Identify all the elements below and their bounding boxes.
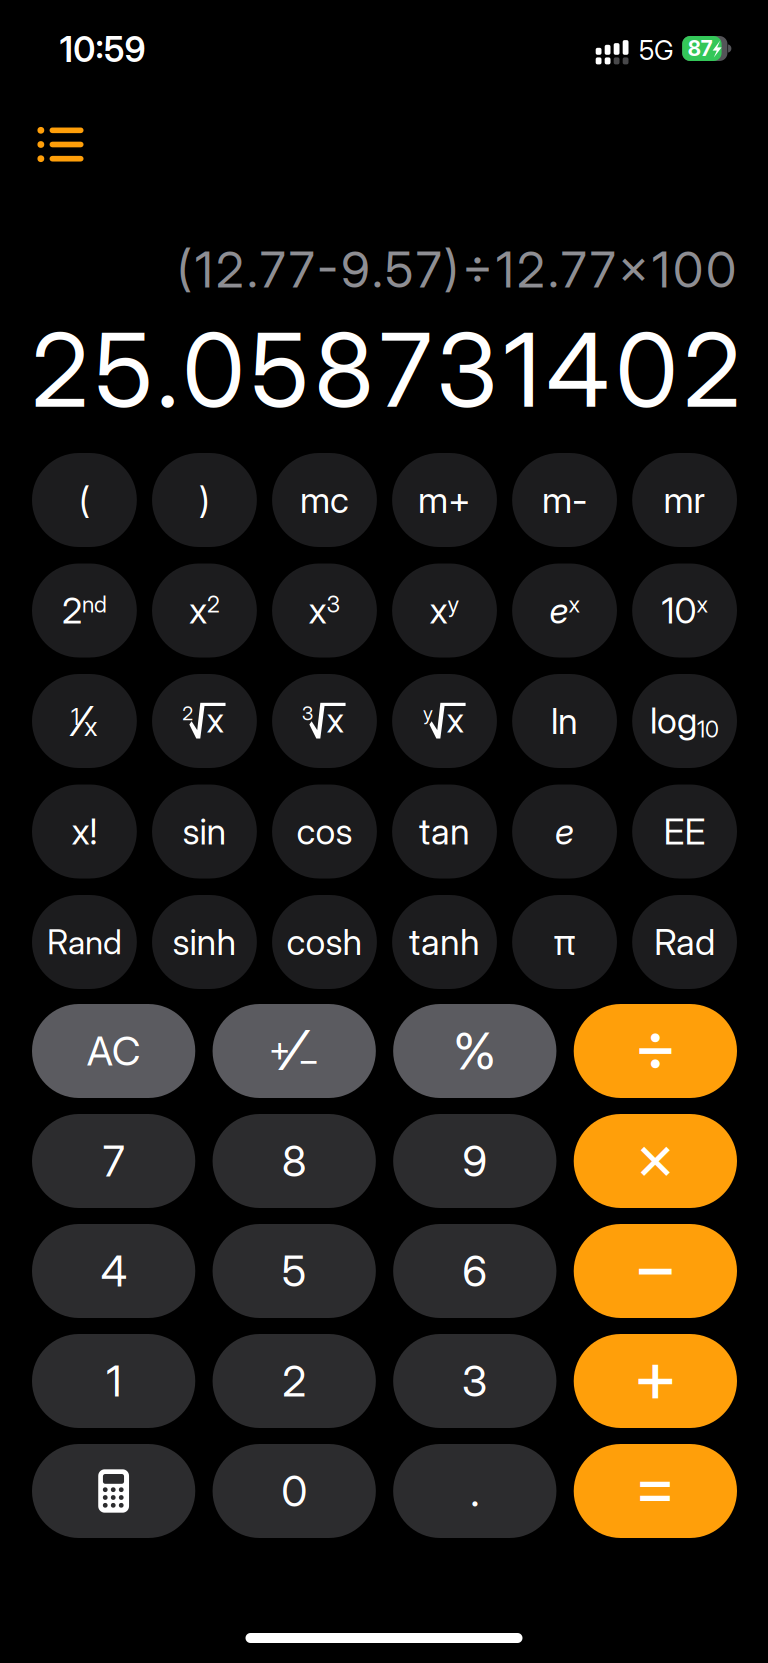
staticText: m- xyxy=(542,478,587,522)
button[interactable]: Rand xyxy=(32,895,137,989)
button[interactable]: 8 xyxy=(213,1114,376,1208)
button[interactable]: log10 xyxy=(632,674,737,768)
button[interactable]: tanh xyxy=(392,895,497,989)
staticText: 10x xyxy=(662,589,708,632)
staticText: x xyxy=(327,699,345,741)
staticText: x3 xyxy=(308,589,340,632)
staticText: + xyxy=(633,1332,678,1419)
button[interactable]: − xyxy=(574,1224,737,1318)
button[interactable]: 2 xyxy=(152,674,257,768)
button[interactable]: x3 xyxy=(272,563,377,657)
staticText: 0 xyxy=(281,1465,307,1517)
button[interactable]: 7 xyxy=(32,1114,195,1208)
staticText: 9 xyxy=(462,1135,487,1187)
button[interactable]: AC xyxy=(32,1004,195,1098)
button[interactable]: x! xyxy=(32,784,137,878)
staticText: x! xyxy=(71,810,97,853)
staticText: 4 xyxy=(101,1245,127,1297)
staticText: = xyxy=(634,1445,677,1527)
button[interactable]: ÷ xyxy=(574,1004,737,1098)
button[interactable]: 6 xyxy=(393,1224,556,1318)
staticText: 3 xyxy=(462,1355,488,1407)
button[interactable]: xy xyxy=(392,563,497,657)
staticText: x2 xyxy=(189,589,220,632)
button[interactable]: = xyxy=(574,1444,737,1538)
button[interactable]: mc xyxy=(272,453,377,547)
button[interactable]: 9 xyxy=(393,1114,556,1208)
button[interactable]: 2 xyxy=(213,1334,376,1428)
button[interactable]: Calculator mode xyxy=(32,1444,195,1538)
button[interactable]: 1⁄x xyxy=(32,674,137,768)
staticText: tanh xyxy=(409,920,480,964)
staticText: x xyxy=(447,699,465,741)
staticText: 2 xyxy=(182,702,193,725)
button[interactable]: sin xyxy=(152,784,257,878)
button[interactable]: % xyxy=(393,1004,556,1098)
staticText: m+ xyxy=(418,478,471,522)
button[interactable]: x2 xyxy=(152,563,257,657)
staticText: (12.77-9.57)÷12.77×100 xyxy=(177,240,736,299)
staticText: sin xyxy=(182,810,226,853)
staticText: EE xyxy=(664,810,706,853)
staticText: x xyxy=(206,699,224,741)
staticText: +⁄− xyxy=(269,1018,320,1082)
staticText: Rad xyxy=(654,920,715,964)
staticText: 3 xyxy=(302,702,314,725)
staticText: Rand xyxy=(47,922,122,962)
button[interactable]: 4 xyxy=(32,1224,195,1318)
staticText: xy xyxy=(429,589,459,632)
button[interactable]: m+ xyxy=(392,453,497,547)
button[interactable]: cos xyxy=(272,784,377,878)
button[interactable]: sinh xyxy=(152,895,257,989)
staticText: cos xyxy=(296,810,352,853)
button[interactable]: 3 xyxy=(272,674,377,768)
button[interactable]: Menu xyxy=(12,100,108,188)
staticText: 2nd xyxy=(62,589,107,632)
button[interactable]: ln xyxy=(512,674,617,768)
staticText: 10:59 xyxy=(60,28,145,70)
staticText: − xyxy=(633,1222,678,1309)
staticText: 8 xyxy=(282,1135,307,1187)
staticText: e xyxy=(555,810,574,853)
button[interactable]: ) xyxy=(152,453,257,547)
button[interactable]: y xyxy=(392,674,497,768)
button[interactable]: 3 xyxy=(393,1334,556,1428)
staticText: log10 xyxy=(650,699,719,743)
button[interactable]: m- xyxy=(512,453,617,547)
staticText: ) xyxy=(199,478,210,522)
staticText: 5 xyxy=(282,1245,307,1297)
staticText: mr xyxy=(664,478,706,522)
staticText: ln xyxy=(551,699,578,743)
button[interactable]: Rad xyxy=(632,895,737,989)
staticText: 1 xyxy=(106,1355,121,1407)
staticText: ( xyxy=(79,478,90,522)
staticText: cosh xyxy=(286,920,362,964)
button[interactable]: e xyxy=(512,784,617,878)
button[interactable]: EE xyxy=(632,784,737,878)
staticText: 2 xyxy=(282,1355,306,1407)
button[interactable]: tan xyxy=(392,784,497,878)
staticText: 1⁄x xyxy=(71,697,98,745)
button[interactable]: 10x xyxy=(632,563,737,657)
staticText: AC xyxy=(87,1027,141,1075)
staticText: ex xyxy=(549,589,579,632)
staticText: ÷ xyxy=(633,1003,677,1088)
button[interactable]: mr xyxy=(632,453,737,547)
button[interactable]: cosh xyxy=(272,895,377,989)
button[interactable]: 0 xyxy=(213,1444,376,1538)
button[interactable]: + xyxy=(574,1334,737,1428)
button[interactable]: +⁄− xyxy=(213,1004,376,1098)
staticText: 7 xyxy=(103,1135,125,1187)
staticText: . xyxy=(470,1465,479,1517)
staticText: y xyxy=(423,702,433,725)
button[interactable]: 5 xyxy=(213,1224,376,1318)
button[interactable]: 1 xyxy=(32,1334,195,1428)
staticText: π xyxy=(553,920,575,964)
button[interactable]: π xyxy=(512,895,617,989)
button[interactable]: 2nd xyxy=(32,563,137,657)
button[interactable]: ex xyxy=(512,563,617,657)
button[interactable]: ( xyxy=(32,453,137,547)
button[interactable]: . xyxy=(393,1444,556,1538)
staticText: 25.058731402 xyxy=(31,309,740,431)
button[interactable]: × xyxy=(574,1114,737,1208)
